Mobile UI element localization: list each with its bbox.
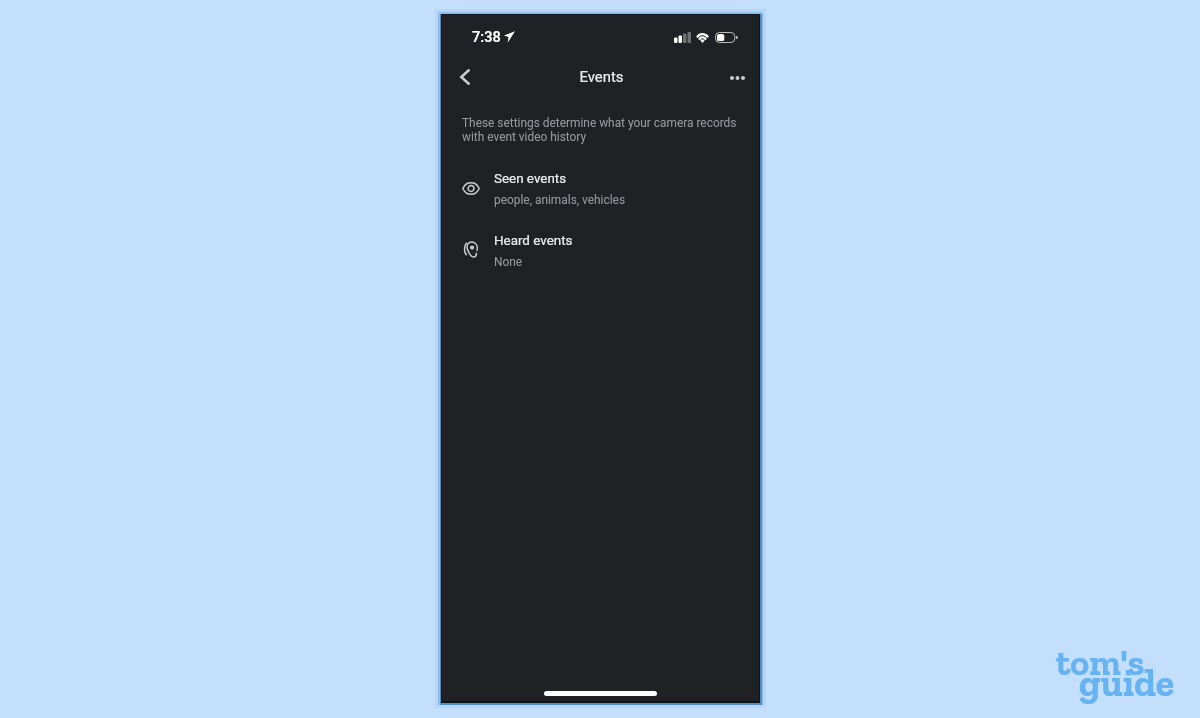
button[interactable]: Heard events bbox=[442, 222, 759, 283]
staticText: These settings determine what your camer… bbox=[462, 116, 749, 144]
staticText: Heard events bbox=[494, 233, 573, 249]
staticText: None bbox=[494, 255, 523, 269]
staticText: guide bbox=[1079, 660, 1175, 706]
staticText: people, animals, vehicles bbox=[494, 193, 626, 207]
staticText: 7:38 bbox=[472, 28, 501, 45]
staticText: Seen events bbox=[494, 171, 567, 187]
button[interactable]: Back bbox=[446, 56, 484, 98]
staticText: tom's bbox=[1056, 641, 1145, 684]
staticText: Events bbox=[579, 68, 624, 85]
button[interactable]: More options bbox=[719, 56, 755, 98]
button[interactable]: Seen events bbox=[442, 160, 759, 221]
